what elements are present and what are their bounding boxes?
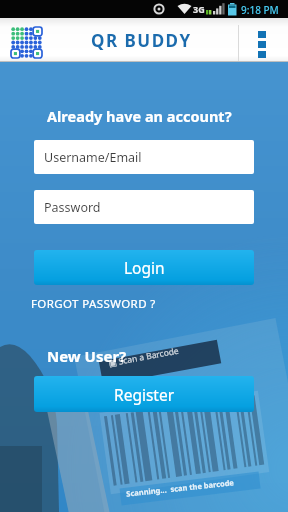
staticText: FORGOT PASSWORD ?: [31, 296, 156, 312]
staticText: Password: [44, 199, 101, 216]
staticText: Scanning... scan the barcode: [126, 477, 235, 499]
staticText: New User?: [47, 346, 127, 366]
staticText: Login: [124, 257, 165, 278]
staticText: Username/Email: [44, 149, 142, 166]
staticText: Register: [114, 384, 175, 405]
staticText: Already have an account?: [47, 106, 232, 126]
staticText: 3G: [193, 3, 205, 15]
staticText: QR BUDDY: [91, 29, 192, 52]
staticText: 9:18 PM: [241, 3, 279, 17]
staticText: ▣ Scan a Barcode: [107, 344, 180, 369]
